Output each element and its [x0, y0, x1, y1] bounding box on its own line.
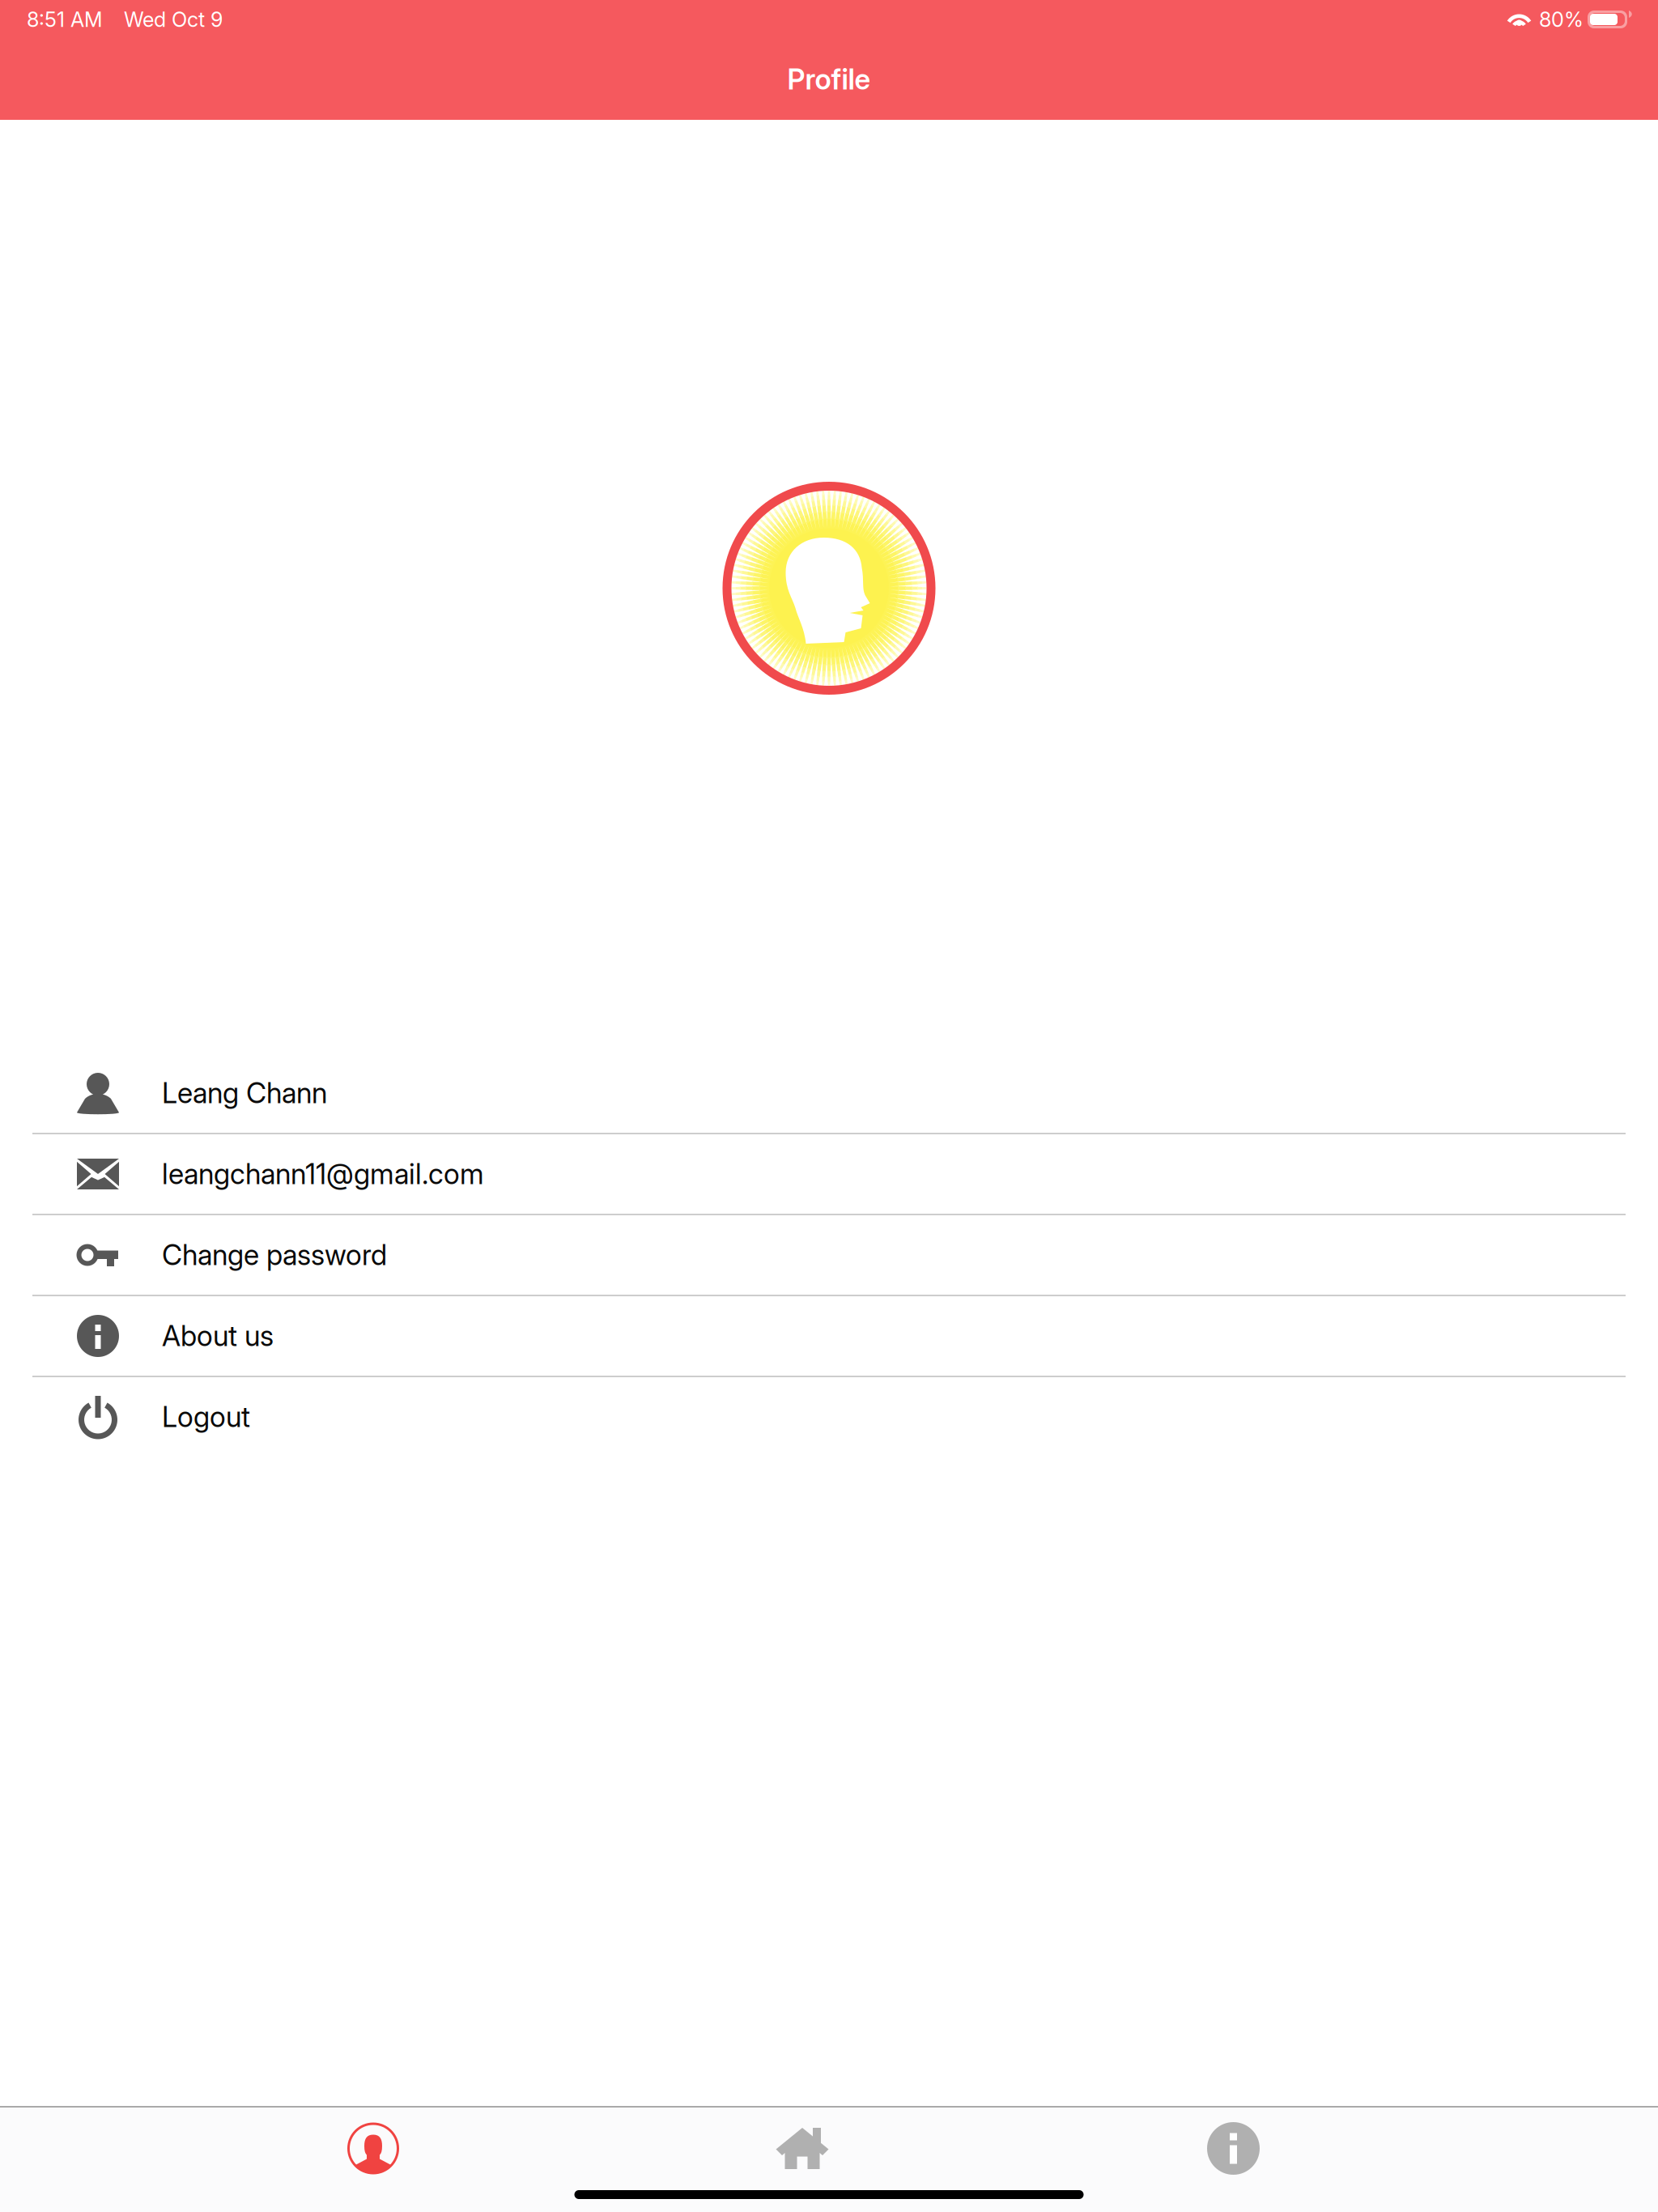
staticText: Leang Chann [162, 1076, 327, 1110]
staticText: About us [162, 1319, 274, 1353]
button[interactable]: Logout [0, 1377, 1658, 1457]
staticText: 80% [1539, 7, 1584, 32]
button[interactable]: Change password [0, 1215, 1658, 1295]
button[interactable]: Leang Chann [0, 1053, 1658, 1133]
staticText: 8:51 AM [27, 7, 103, 32]
button[interactable]: About [1126, 2108, 1341, 2212]
button[interactable]: Home [695, 2108, 910, 2212]
staticText: Wed Oct 9 [124, 7, 223, 32]
staticText: Change password [162, 1238, 387, 1272]
button[interactable]: About us [0, 1296, 1658, 1376]
staticText: leangchann11@gmail.com [162, 1157, 484, 1191]
button[interactable]: leangchann11@gmail.com [0, 1134, 1658, 1214]
button[interactable]: Profile [266, 2108, 480, 2212]
staticText: Profile [787, 62, 871, 96]
staticText: Logout [162, 1400, 250, 1434]
